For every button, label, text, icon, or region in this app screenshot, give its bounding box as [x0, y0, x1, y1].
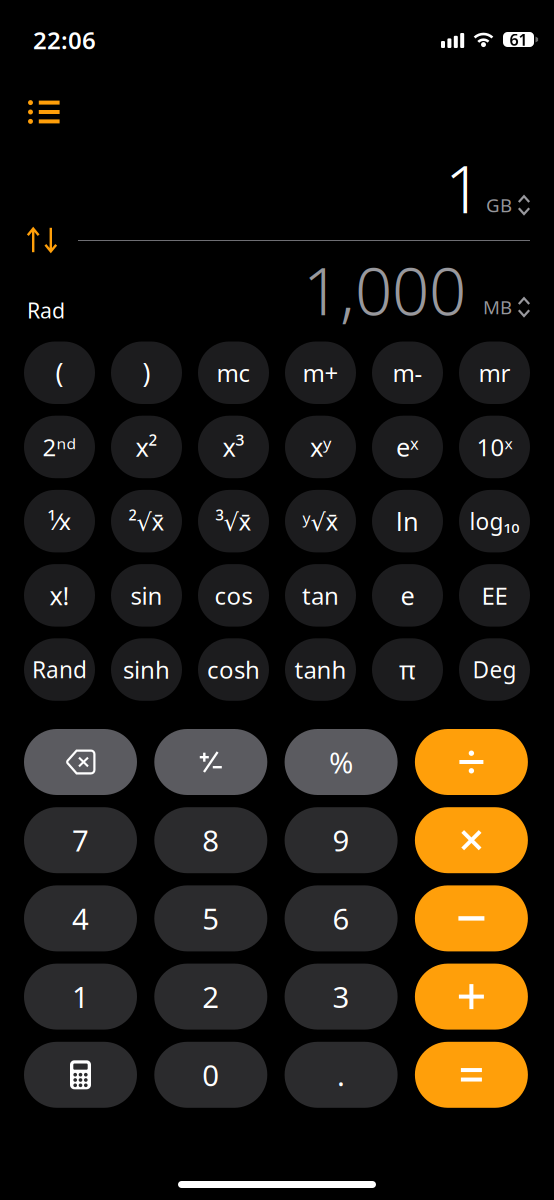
button[interactable]: 3	[285, 964, 398, 1030]
staticText: 61	[509, 29, 527, 50]
button[interactable]: MB	[0, 0, 506, 74]
staticText: eˣ	[396, 430, 419, 464]
button[interactable]: 6	[285, 885, 398, 951]
staticText: log₁₀	[469, 506, 519, 536]
staticText: tan	[302, 579, 339, 611]
staticText: ²√x̄	[128, 505, 164, 537]
button[interactable]: 4	[24, 885, 137, 951]
button[interactable]: mr	[459, 341, 530, 404]
button[interactable]: 9	[285, 807, 398, 873]
staticText: Rad	[27, 296, 65, 324]
staticText: GB	[486, 193, 512, 217]
staticText: m+	[302, 357, 338, 389]
button[interactable]: log₁₀	[459, 490, 530, 552]
button[interactable]: 5	[154, 885, 267, 951]
staticText: π	[399, 653, 416, 686]
staticText: 1	[445, 145, 482, 231]
button[interactable]: 10ˣ	[459, 416, 530, 478]
button[interactable]: x!	[24, 564, 95, 627]
staticText: mc	[216, 357, 250, 389]
staticText: 1,000	[303, 247, 466, 333]
button[interactable]: %	[285, 729, 398, 795]
button[interactable]: x³	[198, 416, 269, 478]
button[interactable]: Swap units	[27, 227, 58, 253]
button[interactable]: 1	[24, 964, 137, 1030]
button[interactable]: Calculator	[24, 1042, 137, 1108]
staticText: 4	[72, 899, 89, 938]
staticText: ln	[396, 504, 419, 538]
staticText: 10ˣ	[476, 431, 512, 463]
button[interactable]: EE	[459, 564, 530, 627]
staticText: %	[329, 742, 353, 781]
button[interactable]: m+	[285, 341, 356, 404]
staticText: 6	[333, 899, 350, 938]
button[interactable]: Equals	[415, 1042, 528, 1108]
button[interactable]: ³√x̄	[198, 490, 269, 552]
button[interactable]: Divide	[415, 729, 528, 795]
button[interactable]: 7	[24, 807, 137, 873]
staticText: (	[55, 355, 63, 390]
button[interactable]: .	[285, 1042, 398, 1108]
button[interactable]: tanh	[285, 638, 356, 701]
staticText: 9	[333, 821, 350, 860]
button[interactable]: m-	[372, 341, 443, 404]
staticText: ³√x̄	[215, 505, 251, 537]
button[interactable]: ln	[372, 490, 443, 552]
button[interactable]: 2	[154, 964, 267, 1030]
button[interactable]: Subtract	[415, 885, 528, 951]
button[interactable]: ¹⁄x	[24, 490, 95, 552]
staticText: Rand	[32, 654, 87, 685]
button[interactable]: tan	[285, 564, 356, 627]
button[interactable]: Multiply	[415, 807, 528, 873]
staticText: 22:06	[33, 24, 96, 56]
staticText: x³	[222, 430, 244, 464]
staticText: sinh	[123, 654, 170, 685]
button[interactable]: )	[111, 341, 182, 404]
button[interactable]: e	[372, 564, 443, 627]
button[interactable]: Rand	[24, 638, 95, 701]
staticText: tanh	[294, 654, 346, 685]
button[interactable]: GB	[0, 0, 506, 74]
staticText: e	[400, 578, 414, 612]
button[interactable]: cos	[198, 564, 269, 627]
staticText: x!	[49, 578, 69, 612]
staticText: .	[337, 1055, 345, 1094]
staticText: sin	[130, 579, 162, 611]
button[interactable]: π	[372, 638, 443, 701]
button[interactable]: sinh	[111, 638, 182, 701]
staticText: x²	[135, 430, 157, 464]
button[interactable]: ²√x̄	[111, 490, 182, 552]
staticText: 7	[72, 821, 89, 860]
staticText: 5	[202, 899, 219, 938]
staticText: cos	[214, 579, 252, 611]
button[interactable]: Deg	[459, 638, 530, 701]
button[interactable]: (	[24, 341, 95, 404]
button[interactable]: cosh	[198, 638, 269, 701]
staticText: 3	[333, 977, 350, 1016]
staticText: 0	[202, 1055, 219, 1094]
staticText: m-	[392, 357, 422, 389]
staticText: )	[142, 355, 150, 390]
button[interactable]: mc	[198, 341, 269, 404]
button[interactable]: 0	[154, 1042, 267, 1108]
button[interactable]: History	[28, 100, 62, 124]
button[interactable]: Plus Minus	[154, 729, 267, 795]
staticText: ¹⁄x	[47, 505, 71, 537]
staticText: 1	[72, 977, 89, 1016]
button[interactable]: Delete	[24, 729, 137, 795]
button[interactable]: sin	[111, 564, 182, 627]
staticText: 8	[202, 821, 219, 860]
button[interactable]: 2ⁿᵈ	[24, 416, 95, 478]
button[interactable]: ʸ√x̄	[285, 490, 356, 552]
button[interactable]: x²	[111, 416, 182, 478]
staticText: 2	[202, 977, 219, 1016]
staticText: 2ⁿᵈ	[42, 431, 76, 463]
staticText: EE	[481, 579, 507, 611]
staticText: mr	[478, 357, 510, 389]
staticText: cosh	[207, 654, 260, 685]
button[interactable]: Add	[415, 964, 528, 1030]
staticText: Deg	[472, 654, 516, 685]
button[interactable]: 8	[154, 807, 267, 873]
button[interactable]: eˣ	[372, 416, 443, 478]
button[interactable]: xʸ	[285, 416, 356, 478]
